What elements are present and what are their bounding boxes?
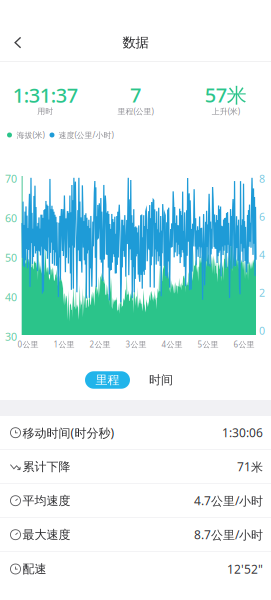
staticText: 里程(公里) [117,106,153,117]
staticText: 用时 [37,106,53,116]
staticText: 12'52" [227,561,263,577]
staticText: 速度(公里/小时) [58,130,113,140]
button[interactable]: 移动时间(时分秒) [0,416,271,450]
staticText: 数据 [122,34,148,51]
staticText: 50 [5,250,17,265]
staticText: 平均速度 [22,493,70,508]
staticText: 6 [259,209,265,224]
button[interactable]: 最大速度 [0,518,271,552]
staticText: 累计下降 [22,459,70,474]
staticText: 1公里 [53,339,74,350]
staticText: 0公里 [17,339,38,350]
staticText: 70 [5,171,17,186]
button[interactable]: 里程 [85,371,130,389]
button[interactable]: 配速 [0,552,271,586]
staticText: 4 [259,247,265,262]
staticText: 配速 [22,562,46,576]
staticText: 移动时间(时分秒) [22,425,114,441]
staticText: 0 [259,323,265,338]
button[interactable]: 平均速度 [0,484,271,518]
staticText: 最大速度 [22,527,70,542]
staticText: 5公里 [197,339,218,350]
button[interactable]: 累计下降 [0,450,271,484]
staticText: 40 [5,290,17,304]
staticText: 8 [259,171,265,186]
staticText: 71米 [237,459,263,475]
staticText: 1:30:06 [222,425,263,441]
staticText: 8.7公里/小时 [194,527,263,543]
staticText: 60 [5,211,17,225]
staticText: 3公里 [125,339,146,350]
staticText: 6公里 [233,339,254,350]
staticText: 30 [5,329,17,344]
staticText: 57米 [205,81,247,108]
button[interactable]: Back [0,24,36,61]
staticText: 时间 [149,373,173,387]
staticText: 上升(米) [212,106,240,117]
staticText: 里程 [95,373,119,387]
staticText: 7 [130,81,141,108]
staticText: 2 [259,285,265,300]
staticText: 1:31:37 [13,82,78,108]
button[interactable]: 时间 [148,371,174,389]
staticText: 4.7公里/小时 [194,493,263,509]
staticText: 海拔(米) [16,130,44,140]
staticText: 4公里 [161,339,182,350]
staticText: 2公里 [89,339,110,350]
